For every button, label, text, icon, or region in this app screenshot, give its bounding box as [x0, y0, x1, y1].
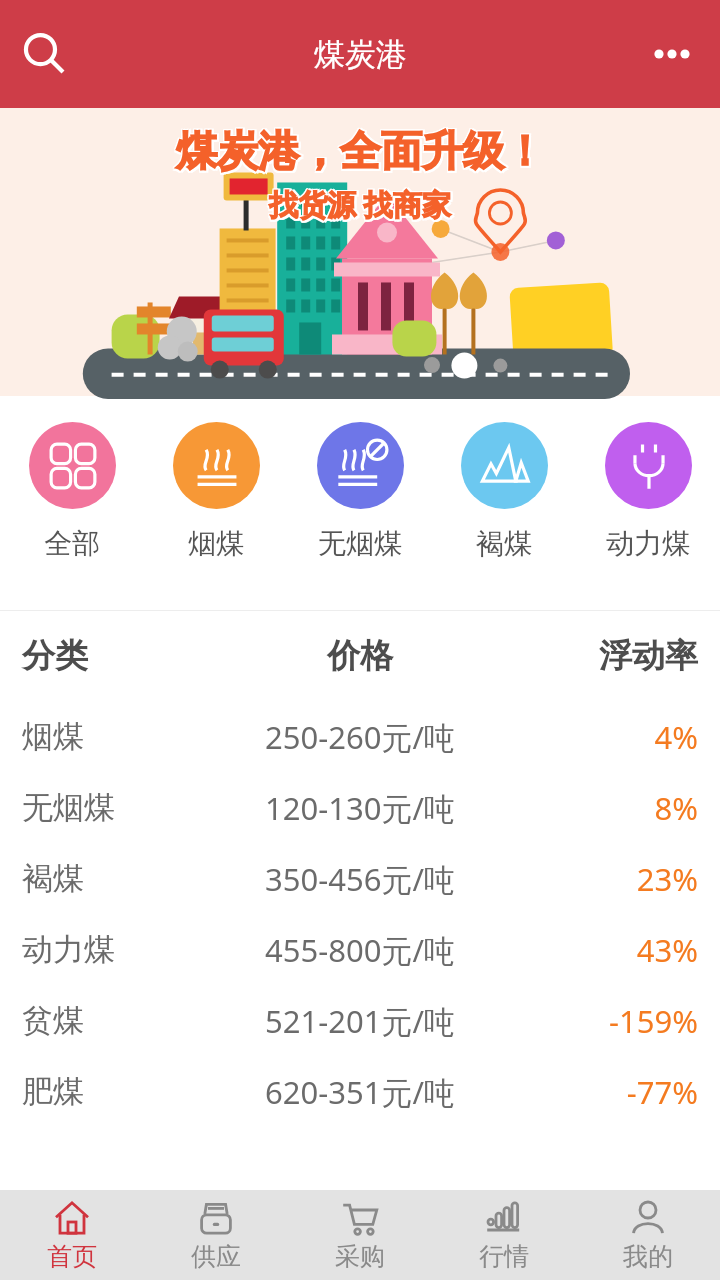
button[interactable]: Search: [8, 18, 80, 90]
button[interactable]: More options: [636, 18, 708, 90]
staticText: 521-201元/吨: [230, 1000, 490, 1042]
staticText: 煤炭港，全面升级！: [178, 126, 547, 178]
staticText: 煤炭港，全面升级！: [178, 125, 547, 177]
staticText: 455-800元/吨: [230, 929, 490, 971]
staticText: 采购: [335, 1241, 385, 1272]
staticText: 褐煤: [476, 526, 532, 561]
staticText: 350-456元/吨: [230, 858, 490, 900]
button[interactable]: 首页: [0, 1190, 144, 1280]
staticText: 找货源 找商家: [268, 183, 450, 223]
button[interactable]: 褐煤: [0, 843, 720, 914]
staticText: 煤炭港，全面升级！: [176, 128, 545, 180]
button[interactable]: 肥煤: [0, 1056, 720, 1127]
staticText: 供应: [191, 1241, 241, 1272]
button[interactable]: 褐煤: [432, 396, 576, 610]
staticText: 价格: [230, 635, 490, 677]
staticText: 煤炭港: [314, 35, 407, 74]
staticText: 煤炭港，全面升级！: [176, 125, 545, 177]
button[interactable]: 采购: [288, 1190, 432, 1280]
staticText: 无烟煤: [22, 788, 230, 827]
staticText: 找货源 找商家: [269, 186, 451, 226]
button[interactable]: 动力煤: [576, 396, 720, 610]
staticText: 全部: [44, 526, 100, 561]
staticText: 贫煤: [22, 1001, 230, 1040]
staticText: 分类: [22, 635, 230, 677]
staticText: 找货源 找商家: [269, 183, 451, 223]
staticText: 首页: [47, 1241, 97, 1272]
staticText: 43%: [490, 929, 698, 971]
staticText: 找货源 找商家: [268, 186, 450, 226]
staticText: 褐煤: [22, 859, 230, 898]
staticText: 煤炭港，全面升级！: [175, 126, 544, 178]
staticText: 煤炭港，全面升级！: [178, 128, 547, 180]
button[interactable]: 供应: [144, 1190, 288, 1280]
staticText: 烟煤: [188, 526, 244, 561]
staticText: 动力煤: [606, 526, 690, 561]
button[interactable]: 烟煤: [144, 396, 288, 610]
staticText: 8%: [490, 787, 698, 829]
staticText: 煤炭港，全面升级！: [175, 125, 544, 177]
staticText: -159%: [490, 1000, 698, 1042]
staticText: 煤炭港，全面升级！: [176, 126, 545, 178]
staticText: 120-130元/吨: [230, 787, 490, 829]
staticText: 行情: [479, 1241, 529, 1272]
staticText: 找货源 找商家: [268, 184, 450, 224]
button[interactable]: 贫煤: [0, 985, 720, 1056]
staticText: 4%: [490, 716, 698, 758]
button[interactable]: 我的: [576, 1190, 720, 1280]
button[interactable]: 全部: [0, 396, 144, 610]
button[interactable]: 无烟煤: [288, 396, 432, 610]
staticText: 250-260元/吨: [230, 716, 490, 758]
staticText: 肥煤: [22, 1072, 230, 1111]
staticText: 无烟煤: [318, 526, 402, 561]
button[interactable]: 烟煤: [0, 701, 720, 772]
button[interactable]: 动力煤: [0, 914, 720, 985]
staticText: 浮动率: [490, 635, 698, 677]
button[interactable]: 煤炭港，全面升级！: [0, 108, 720, 396]
staticText: 找货源 找商家: [271, 184, 453, 224]
staticText: -77%: [490, 1071, 698, 1113]
staticText: 煤炭港，全面升级！: [175, 128, 544, 180]
staticText: 动力煤: [22, 930, 230, 969]
staticText: 23%: [490, 858, 698, 900]
button[interactable]: 行情: [432, 1190, 576, 1280]
button[interactable]: 无烟煤: [0, 772, 720, 843]
staticText: 烟煤: [22, 717, 230, 756]
staticText: 找货源 找商家: [271, 183, 453, 223]
staticText: 620-351元/吨: [230, 1071, 490, 1113]
staticText: 找货源 找商家: [269, 184, 451, 224]
staticText: 找货源 找商家: [271, 186, 453, 226]
staticText: 我的: [623, 1241, 673, 1272]
